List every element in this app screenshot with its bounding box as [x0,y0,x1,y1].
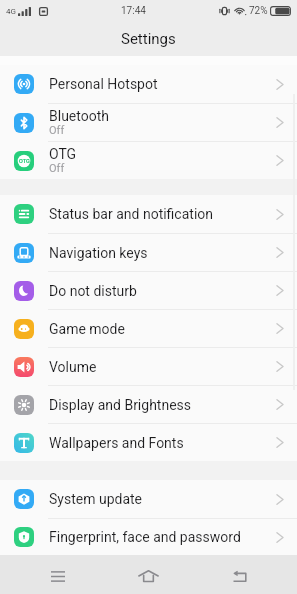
button[interactable]: OTG [0,142,297,179]
staticText: Display and Brightness [49,397,192,413]
button[interactable]: Bluetooth [0,104,297,141]
button[interactable]: Do not disturb [0,272,297,309]
staticText: Game mode [49,321,125,337]
button[interactable]: Home [103,555,194,594]
staticText: System update [49,491,143,507]
button[interactable]: Fingerprint, face and password [0,519,297,555]
staticText: Personal Hotspot [49,76,158,92]
button[interactable]: Personal Hotspot [0,65,297,103]
staticText: Fingerprint, face and password [49,529,241,545]
staticText: 17:44 [121,5,146,17]
staticText: Off [49,162,65,175]
button[interactable]: Game mode [0,310,297,347]
button[interactable]: Volume [0,348,297,385]
button[interactable]: Navigation keys [0,234,297,271]
staticText: Do not disturb [49,283,137,299]
staticText: Off [49,124,65,137]
button[interactable]: Wallpapers and Fonts [0,424,297,461]
button[interactable]: Status bar and notification [0,195,297,233]
staticText: OTG [49,146,77,162]
staticText: 72% [249,5,268,17]
staticText: OTG [19,158,30,164]
button[interactable]: System update [0,480,297,518]
staticText: Status bar and notification [49,206,214,222]
staticText: Settings [121,30,176,48]
button[interactable]: Display and Brightness [0,386,297,423]
staticText: 4G [6,7,16,16]
staticText: Bluetooth [49,108,109,124]
button[interactable]: Back [194,555,285,594]
button[interactable]: Recent apps [12,555,103,594]
staticText: Volume [49,359,97,375]
staticText: Navigation keys [49,245,148,261]
staticText: Wallpapers and Fonts [49,435,184,451]
